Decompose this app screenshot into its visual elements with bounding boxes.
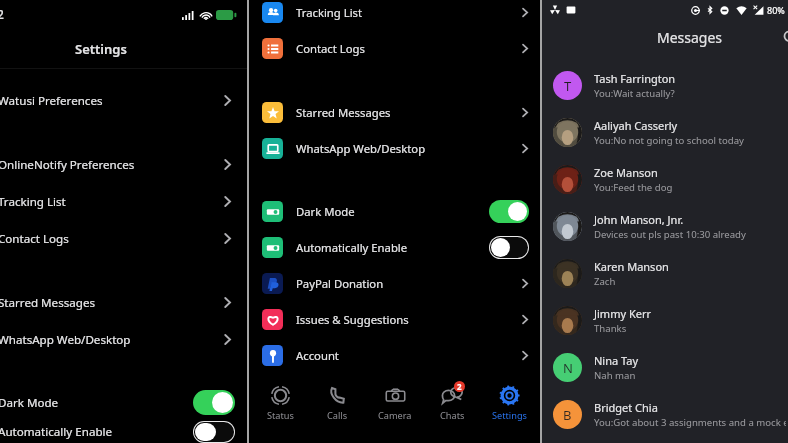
button[interactable]: B [542, 391, 788, 438]
button[interactable]: N [542, 344, 788, 391]
staticText: Zach [594, 275, 616, 288]
button[interactable]: Watusi Preferences [0, 82, 247, 119]
staticText: You:No not going to school today [594, 134, 744, 147]
staticText: Thanks [594, 322, 627, 335]
button[interactable]: WhatsApp Web/Desktop [249, 130, 540, 166]
button[interactable]: Karen Manson [542, 250, 788, 297]
staticText: Nah man [594, 369, 636, 382]
staticText: Camera [378, 409, 412, 422]
staticText: WhatsApp Web/Desktop [296, 141, 521, 156]
button[interactable]: Settings [483, 383, 535, 424]
staticText: Devices out pls past 10:30 already [594, 228, 746, 241]
button[interactable]: Starred Messages [0, 284, 247, 321]
staticText: 2 [457, 381, 462, 392]
button[interactable]: John Manson, Jnr. [542, 203, 788, 250]
staticText: Starred Messages [296, 105, 521, 120]
button[interactable]: WhatsApp Web/Desktop [0, 321, 247, 358]
button[interactable]: Tracking List [249, 0, 540, 30]
button[interactable]: Dark Mode [249, 193, 540, 229]
button[interactable]: T [542, 62, 788, 109]
staticText: Messages [657, 28, 723, 47]
button[interactable]: Status [254, 383, 306, 424]
staticText: You:Got about 3 assignments and a mock e [594, 416, 786, 429]
staticText: B [563, 406, 572, 424]
button[interactable]: Zoe Manson [542, 156, 788, 203]
staticText: WhatsApp Web/Desktop [0, 332, 221, 348]
button[interactable]: 2 [426, 383, 478, 424]
staticText: Aaliyah Casserly [594, 118, 678, 133]
button[interactable]: Toggle on [193, 390, 235, 415]
button[interactable]: Toggle off [489, 236, 529, 259]
button[interactable]: PayPal Donation [249, 265, 540, 301]
button[interactable]: Toggle on [489, 200, 529, 223]
staticText: 80% [767, 4, 785, 16]
staticText: Nina Tay [594, 353, 639, 368]
staticText: Automatically Enable [0, 424, 191, 440]
button[interactable]: Contact Logs [249, 30, 540, 66]
staticText: Bridget Chia [594, 400, 658, 415]
staticText: Chats [440, 409, 465, 422]
button[interactable]: Toggle off [193, 421, 235, 443]
staticText: Automatically Enable [296, 240, 489, 255]
staticText: Tash Farrington [594, 71, 676, 86]
button[interactable]: Account [249, 337, 540, 373]
staticText: Zoe Manson [594, 165, 658, 180]
staticText: T [564, 77, 572, 95]
button[interactable]: Dark Mode [0, 384, 247, 421]
button[interactable]: Issues & Suggestions [249, 301, 540, 337]
staticText: Issues & Suggestions [296, 312, 521, 327]
staticText: PayPal Donation [296, 276, 521, 291]
staticText: Karen Manson [594, 259, 669, 274]
button[interactable]: Automatically Enable [249, 229, 540, 265]
button[interactable]: Tracking List [0, 183, 247, 220]
button[interactable]: OnlineNotify Preferences [0, 146, 247, 183]
staticText: John Manson, Jnr. [594, 212, 684, 227]
staticText: Account [296, 348, 521, 363]
button[interactable]: Calls [311, 383, 363, 424]
staticText: You:Feed the dog [594, 181, 673, 194]
staticText: Jimmy Kerr [594, 306, 651, 321]
staticText: Dark Mode [0, 395, 191, 411]
staticText: You:Wait actually? [594, 87, 675, 100]
staticText: Dark Mode [296, 204, 489, 219]
button[interactable]: Jimmy Kerr [542, 297, 788, 344]
button[interactable]: Starred Messages [249, 94, 540, 130]
staticText: Tracking List [0, 194, 221, 210]
staticText: Watusi Preferences [0, 93, 221, 109]
button[interactable]: Automatically Enable [0, 421, 247, 443]
staticText: Calls [327, 409, 348, 422]
staticText: Tracking List [296, 5, 521, 20]
button[interactable]: Contact Logs [0, 220, 247, 257]
staticText: Contact Logs [296, 41, 521, 56]
staticText: Settings [75, 40, 127, 58]
staticText: 2 [0, 6, 4, 22]
staticText: Settings [492, 409, 527, 422]
staticText: Starred Messages [0, 295, 221, 311]
staticText: Contact Logs [0, 231, 221, 247]
button[interactable]: Camera [369, 383, 421, 424]
staticText: Status [267, 409, 294, 422]
staticText: N [563, 359, 573, 377]
staticText: OnlineNotify Preferences [0, 157, 221, 173]
button[interactable]: Search [778, 25, 788, 49]
button[interactable]: Aaliyah Casserly [542, 109, 788, 156]
